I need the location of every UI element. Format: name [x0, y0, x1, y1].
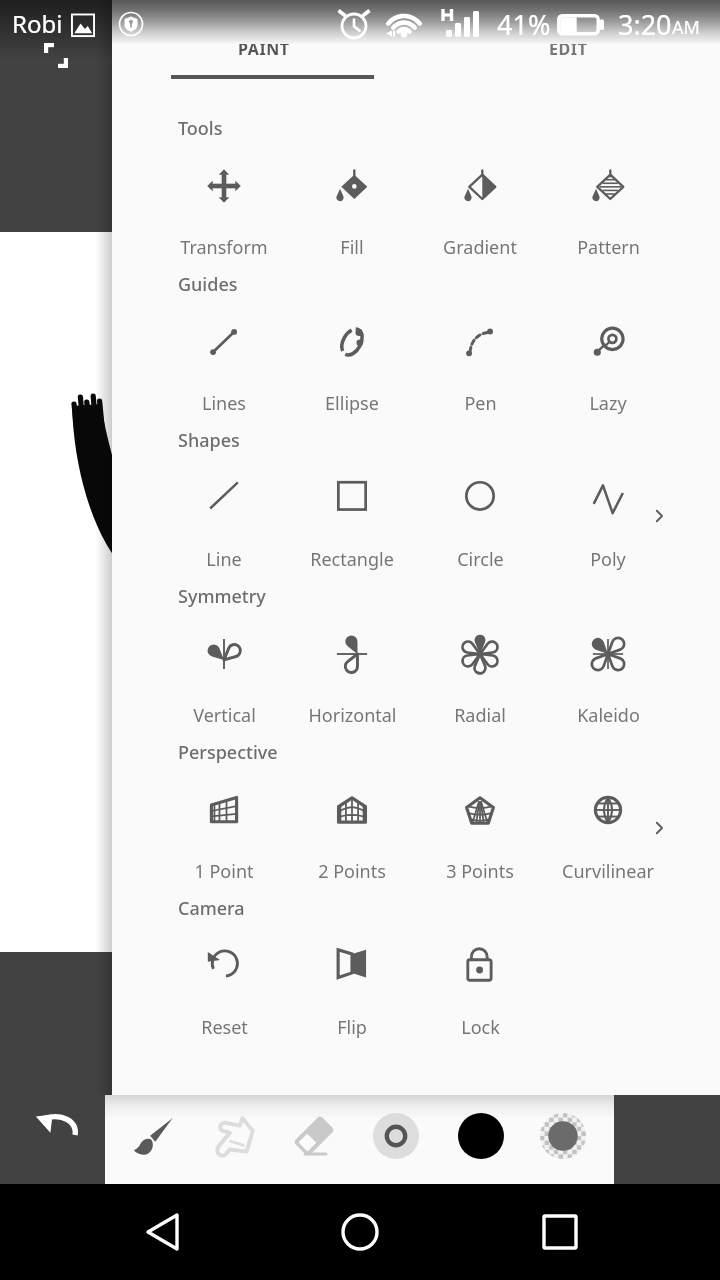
- staticText: Pattern: [577, 235, 640, 260]
- staticText: PAINT: [238, 38, 290, 60]
- staticText: AM: [672, 15, 700, 40]
- staticText: Robi: [12, 7, 63, 40]
- staticText: Ellipse: [325, 391, 379, 416]
- staticText: Lock: [461, 1015, 500, 1040]
- staticText: Shapes: [178, 428, 240, 453]
- staticText: 2 Points: [318, 859, 386, 884]
- button[interactable]: Radial: [416, 633, 544, 728]
- button[interactable]: Line: [160, 477, 288, 572]
- button[interactable]: Ellipse: [288, 321, 416, 416]
- button[interactable]: Transform: [160, 165, 288, 260]
- button[interactable]: Colour: [458, 1113, 504, 1159]
- staticText: Camera: [178, 896, 245, 921]
- button[interactable]: Reset: [160, 945, 288, 1040]
- staticText: Tools: [178, 116, 223, 141]
- staticText: 3 Points: [446, 859, 514, 884]
- button[interactable]: Horizontal: [288, 633, 416, 728]
- staticText: 41%: [497, 6, 551, 43]
- button[interactable]: Flip: [288, 945, 416, 1040]
- staticText: Perspective: [178, 740, 278, 765]
- staticText: Horizontal: [308, 703, 397, 728]
- staticText: Poly: [590, 547, 626, 572]
- button[interactable]: Gallery: [71, 14, 95, 38]
- button[interactable]: Kaleido: [544, 633, 672, 728]
- staticText: Gradient: [443, 235, 517, 260]
- button[interactable]: Lines: [160, 321, 288, 416]
- staticText: Fill: [340, 235, 364, 260]
- button[interactable]: Curvilinear: [544, 789, 672, 884]
- staticText: Reset: [201, 1015, 248, 1040]
- button[interactable]: Pattern: [544, 165, 672, 260]
- button[interactable]: Brush: [128, 1110, 180, 1162]
- staticText: Guides: [178, 272, 238, 297]
- staticText: Line: [206, 547, 242, 572]
- button[interactable]: 3 Points: [416, 789, 544, 884]
- staticText: 3:20: [618, 6, 672, 43]
- button[interactable]: 2 Points: [288, 789, 416, 884]
- button[interactable]: Brush size: [373, 1113, 419, 1159]
- button[interactable]: 1 Point: [160, 789, 288, 884]
- button[interactable]: More: [648, 505, 670, 527]
- staticText: Lines: [202, 391, 246, 416]
- button[interactable]: Lazy: [544, 321, 672, 416]
- staticText: Rectangle: [310, 547, 394, 572]
- staticText: Vertical: [193, 703, 256, 728]
- button[interactable]: Circle: [416, 477, 544, 572]
- staticText: Circle: [457, 547, 504, 572]
- button[interactable]: Gradient: [416, 165, 544, 260]
- staticText: Symmetry: [178, 584, 266, 609]
- button[interactable]: PAINT: [112, 26, 416, 72]
- staticText: Lazy: [589, 391, 627, 416]
- button[interactable]: Rectangle: [288, 477, 416, 572]
- staticText: 1 Point: [194, 859, 254, 884]
- button[interactable]: Vertical: [160, 633, 288, 728]
- button[interactable]: Opacity: [540, 1113, 586, 1159]
- button[interactable]: EDIT: [416, 26, 720, 72]
- button[interactable]: More: [648, 817, 670, 839]
- staticText: Pen: [464, 391, 497, 416]
- staticText: Curvilinear: [562, 859, 654, 884]
- staticText: Flip: [337, 1015, 367, 1040]
- staticText: EDIT: [549, 38, 588, 60]
- staticText: Radial: [454, 703, 506, 728]
- button[interactable]: Pen: [416, 321, 544, 416]
- button[interactable]: Lock: [416, 945, 544, 1040]
- button[interactable]: Poly: [544, 477, 672, 572]
- button[interactable]: Undo: [28, 1098, 84, 1154]
- button[interactable]: Fill: [288, 165, 416, 260]
- staticText: Kaleido: [577, 703, 640, 728]
- staticText: Transform: [180, 235, 268, 260]
- button[interactable]: Eraser: [288, 1110, 340, 1162]
- button[interactable]: Smudge: [207, 1110, 259, 1162]
